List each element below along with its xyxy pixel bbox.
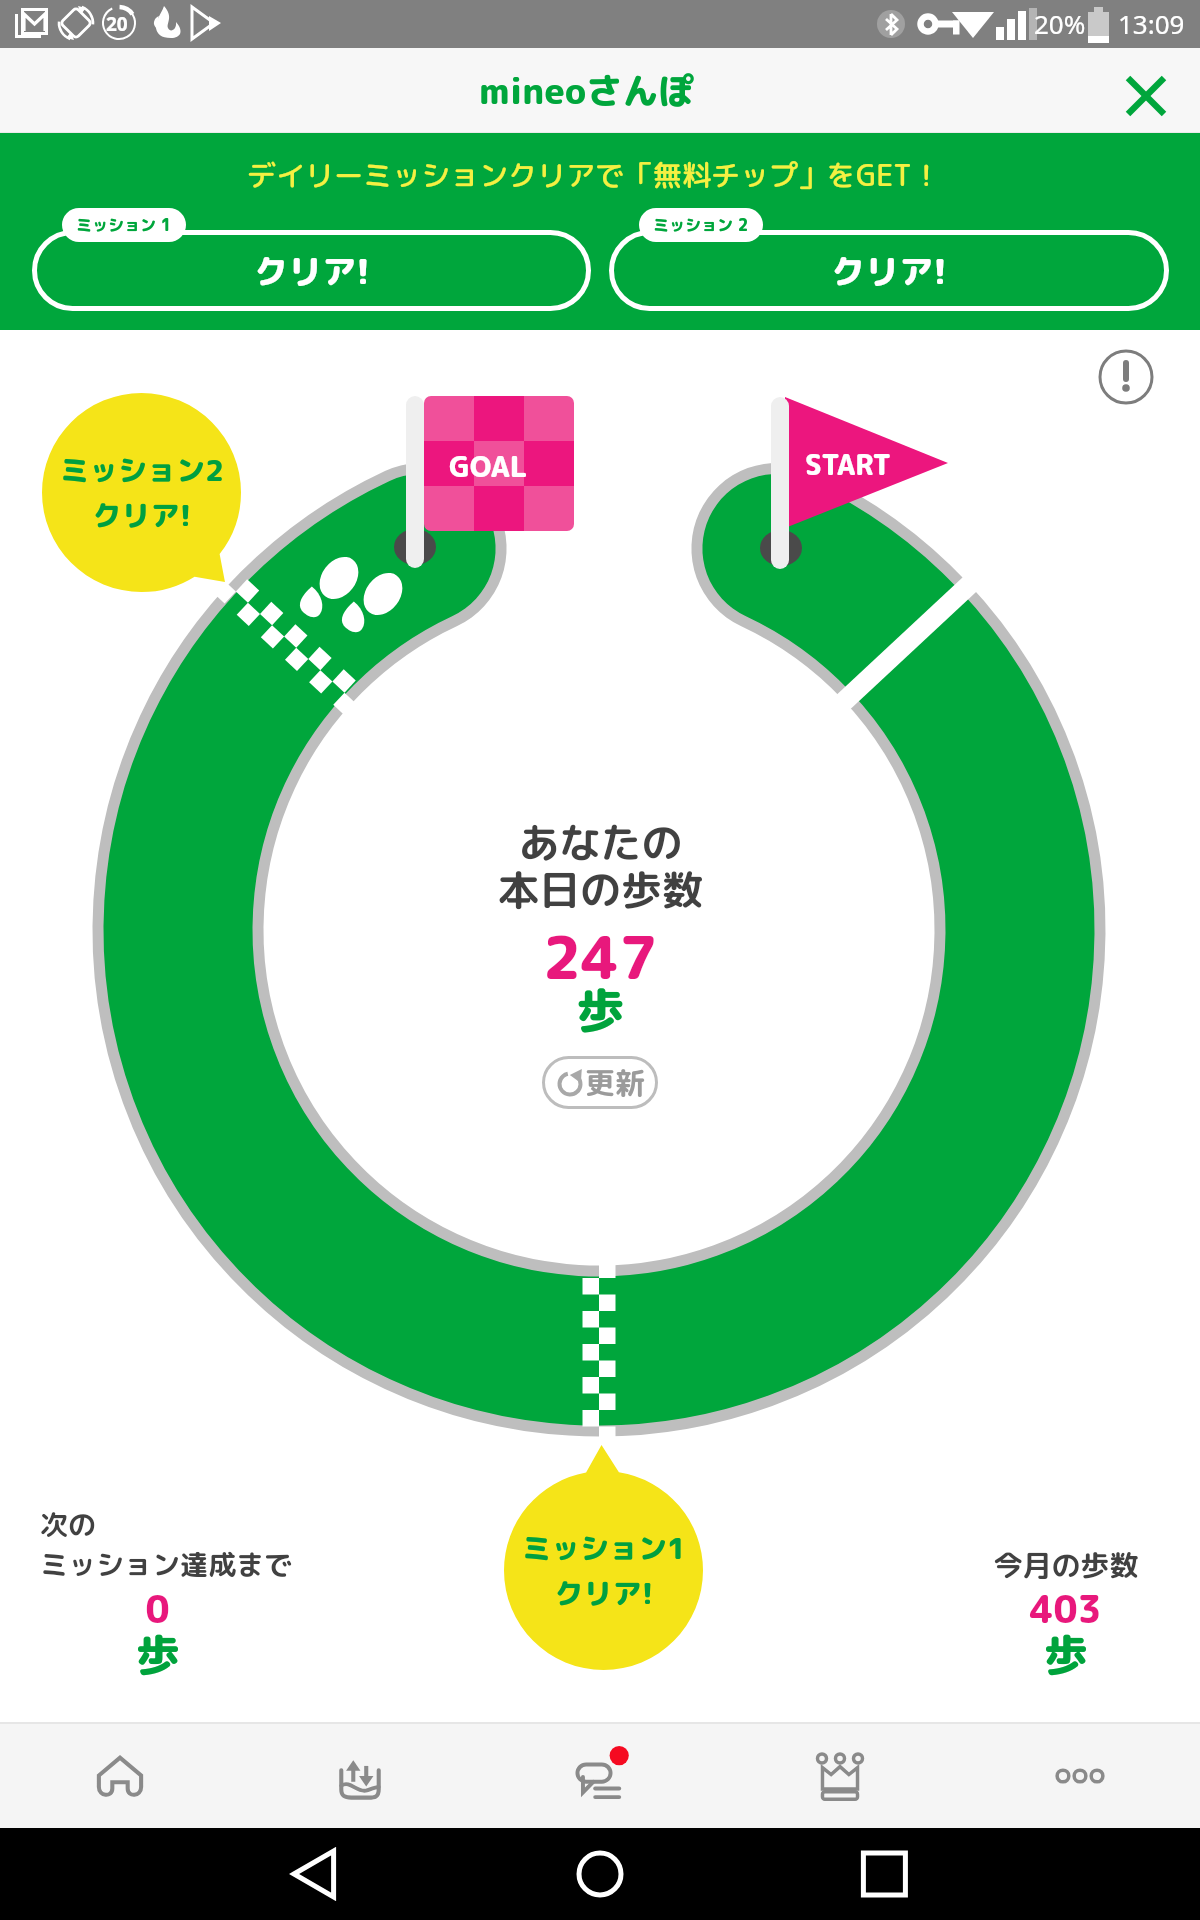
staticText: 歩 bbox=[136, 1624, 180, 1685]
button[interactable]: Community bbox=[480, 1724, 720, 1828]
staticText: ミッション 2 bbox=[653, 214, 749, 236]
staticText: ミッション2 クリア! bbox=[60, 450, 224, 535]
button[interactable]: More bbox=[960, 1724, 1200, 1828]
staticText: 403 bbox=[1029, 1583, 1102, 1635]
staticText: デイリーミッションクリアで「無料チップ」をGET！ bbox=[247, 155, 941, 195]
staticText: クリア! bbox=[831, 247, 947, 294]
staticText: ミッション 1 bbox=[76, 214, 172, 236]
staticText: 0 bbox=[145, 1583, 170, 1635]
button[interactable]: Home bbox=[0, 1724, 240, 1828]
staticText: GOAL bbox=[449, 446, 528, 486]
staticText: 13:09 bbox=[1118, 6, 1185, 41]
staticText: 20% bbox=[1034, 6, 1086, 41]
staticText: クリア! bbox=[254, 247, 370, 294]
button[interactable]: Rewards bbox=[720, 1724, 960, 1828]
button[interactable]: クリア! bbox=[609, 230, 1169, 311]
staticText: 今月の歩数 bbox=[993, 1545, 1139, 1585]
staticText: あなたの 本日の歩数 bbox=[498, 814, 703, 919]
button[interactable]: Close bbox=[1118, 68, 1174, 124]
staticText: ミッション1 クリア! bbox=[522, 1528, 686, 1613]
staticText: START bbox=[805, 445, 892, 484]
staticText: mineoさんぽ bbox=[479, 65, 695, 115]
button[interactable]: Data bbox=[240, 1724, 480, 1828]
staticText: 20 bbox=[106, 11, 128, 37]
staticText: 歩 bbox=[576, 976, 625, 1043]
staticText: 歩 bbox=[1044, 1624, 1088, 1685]
button[interactable]: 更新 bbox=[542, 1056, 658, 1109]
staticText: 次の ミッション達成まで bbox=[40, 1505, 293, 1584]
staticText: 更新 bbox=[585, 1062, 645, 1104]
staticText: 247 bbox=[542, 916, 658, 998]
button[interactable]: Information bbox=[1098, 349, 1154, 405]
button[interactable]: クリア! bbox=[32, 230, 591, 311]
